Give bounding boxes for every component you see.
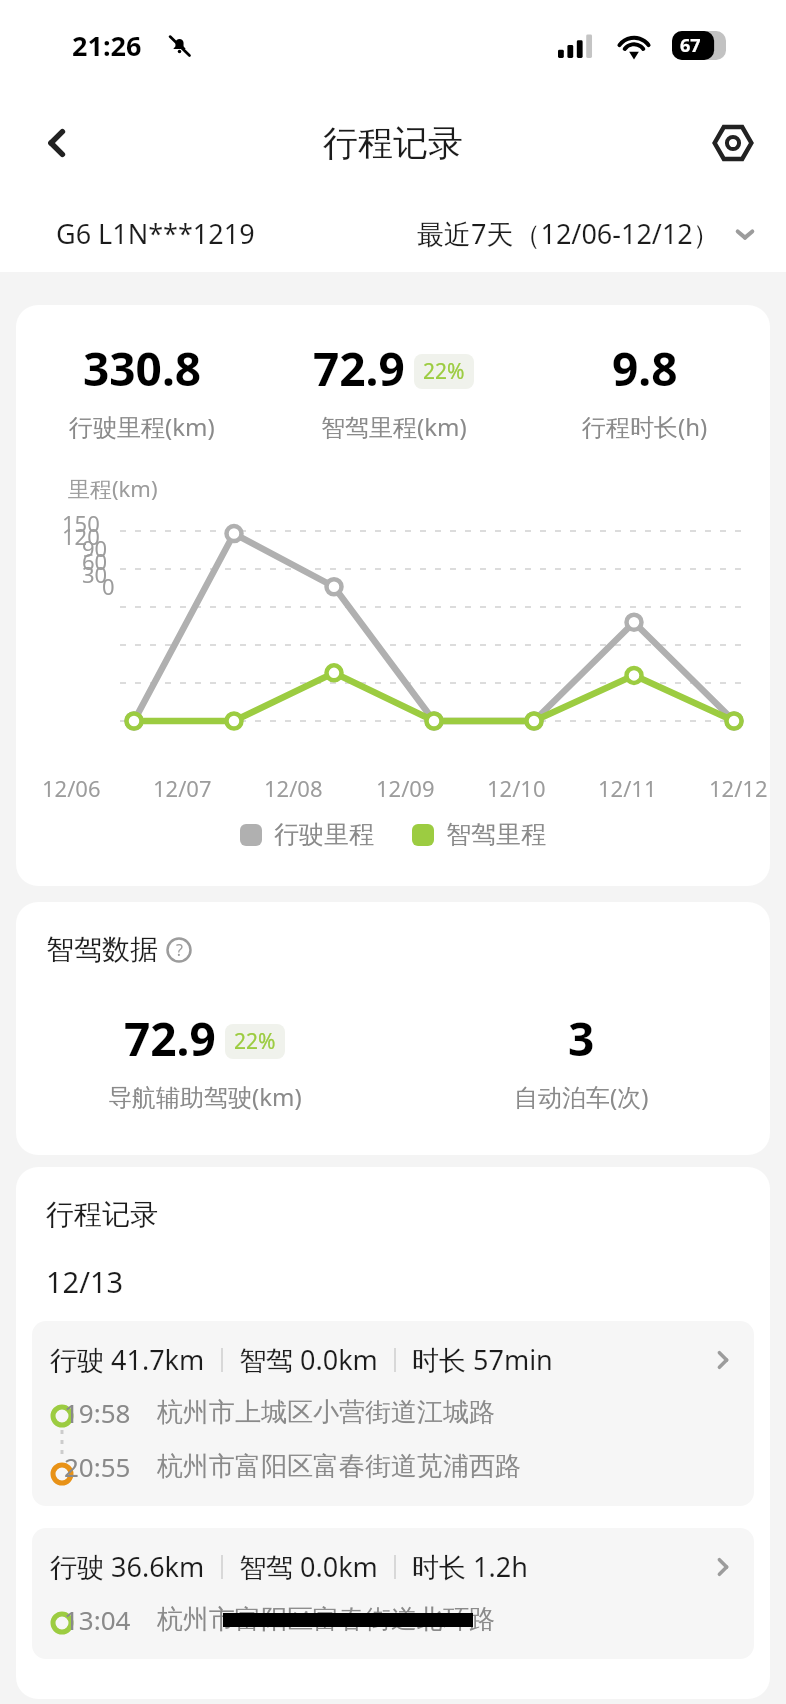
button[interactable]: 行驶 36.6km [32,1528,754,1659]
staticText: 72.9 [313,337,405,400]
staticText: 杭州市上城区小营街道江城路 [157,1396,495,1429]
staticText: G6 L1N***1219 [56,215,255,252]
staticText: 12/11 [598,773,657,803]
staticText: 19:58 [64,1395,131,1430]
staticText: 12/06 [42,773,101,803]
staticText: 22% [423,357,465,386]
staticText: 30 [82,559,108,589]
staticText: 12/13 [46,1262,124,1301]
staticText: 12/09 [376,773,435,803]
staticText: 12/08 [264,773,323,803]
staticText: 行程时长(h) [582,410,708,443]
staticText: 行程记录 [46,1197,158,1232]
button[interactable]: Settings [702,112,764,174]
staticText: 智驾数据 [46,932,158,967]
staticText: 杭州市富阳区富春街道北环路 [157,1603,495,1636]
staticText: 150 [62,508,100,538]
staticText: 智驾 0.0km [239,1341,378,1378]
staticText: 时长 57min [412,1341,553,1378]
staticText: 72.9 [124,1007,216,1070]
staticText: 90 [82,533,108,563]
staticText: 67 [680,33,701,58]
staticText: 330.8 [83,337,202,400]
staticText: 3 [568,1007,595,1070]
staticText: 行程记录 [323,121,463,165]
staticText: 智驾里程 [446,819,546,850]
staticText: 9.8 [612,337,678,400]
staticText: 行驶 36.6km [50,1548,205,1585]
staticText: 13:04 [64,1602,131,1637]
staticText: 智驾里程(km) [321,410,467,443]
staticText: 12/07 [153,773,212,803]
staticText: 12/12 [709,773,768,803]
staticText: 120 [62,521,100,551]
staticText: 智驾 0.0km [239,1548,378,1585]
button[interactable]: 最近7天（12/06-12/12） [417,215,758,252]
staticText: 行驶里程 [274,819,374,850]
staticText: ? [176,939,183,961]
button[interactable]: Help [166,937,192,963]
button[interactable]: Back [26,112,88,174]
staticText: 21:26 [72,27,142,64]
staticText: 行驶 41.7km [50,1341,205,1378]
staticText: 行驶里程(km) [69,410,215,443]
button[interactable]: 智驾里程 [412,819,546,850]
staticText: 0 [102,571,115,601]
staticText: 导航辅助驾驶(km) [108,1080,302,1113]
staticText: 60 [82,546,108,576]
staticText: 22% [234,1027,276,1056]
staticText: 时长 1.2h [412,1548,528,1585]
button[interactable]: 行驶 41.7km [32,1321,754,1506]
staticText: 12/10 [487,773,546,803]
staticText: 里程(km) [68,473,158,503]
button[interactable]: 行驶里程 [240,819,374,850]
staticText: 自动泊车(次) [514,1080,649,1113]
staticText: 杭州市富阳区富春街道苋浦西路 [157,1450,521,1483]
staticText: 20:55 [64,1449,131,1484]
staticText: 最近7天（12/06-12/12） [417,215,720,252]
